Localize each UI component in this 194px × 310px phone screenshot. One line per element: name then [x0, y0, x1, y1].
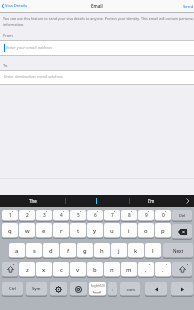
button[interactable]: Sym	[26, 282, 47, 296]
staticText: d	[49, 247, 53, 255]
staticText: Ctrl	[9, 286, 17, 292]
staticText: 4	[60, 212, 63, 219]
staticText: m	[126, 266, 132, 274]
button[interactable]: o	[138, 223, 154, 238]
button[interactable]	[172, 224, 192, 239]
button[interactable]: 8	[121, 210, 137, 221]
button[interactable]: g	[77, 243, 93, 258]
button[interactable]: Ctrl	[2, 282, 23, 296]
staticText: o	[144, 227, 148, 235]
button[interactable]: t	[70, 223, 86, 238]
staticText: h	[100, 247, 104, 255]
button[interactable]	[184, 195, 194, 207]
button[interactable]: .com	[120, 282, 140, 296]
button[interactable]: y	[87, 223, 103, 238]
staticText: f	[67, 247, 70, 255]
button[interactable]: d	[43, 243, 59, 258]
staticText: x	[42, 266, 46, 274]
button[interactable]: m	[121, 262, 137, 277]
button[interactable]	[50, 282, 67, 296]
button[interactable]: u	[104, 223, 120, 238]
staticText: 6	[94, 212, 97, 219]
button[interactable]: p	[155, 223, 171, 238]
staticText: Next	[173, 248, 184, 254]
staticText: .	[162, 266, 164, 274]
button[interactable]: i	[121, 223, 137, 238]
button[interactable]: x	[36, 262, 52, 277]
button[interactable]	[138, 195, 164, 207]
button[interactable]: q	[2, 223, 18, 238]
staticText: t	[77, 227, 80, 235]
button[interactable]: Del	[172, 210, 192, 221]
staticText: q	[8, 227, 12, 235]
button[interactable]	[2, 262, 18, 277]
button[interactable]: f	[60, 243, 76, 258]
button[interactable]: 9	[138, 210, 154, 221]
button[interactable]: 2	[19, 210, 35, 221]
button[interactable]	[20, 195, 46, 207]
staticText: r	[60, 227, 63, 235]
staticText: v	[76, 266, 80, 274]
button[interactable]	[171, 282, 193, 296]
button[interactable]: b	[87, 262, 103, 277]
button[interactable]: .	[155, 262, 171, 277]
button[interactable]: English(US)	[89, 282, 106, 296]
button[interactable]: z	[19, 262, 35, 277]
staticText: w	[25, 227, 30, 235]
staticText: Sym	[32, 286, 41, 292]
staticText: English(US)	[91, 284, 105, 288]
staticText: You can use this feature to send your vi…	[3, 16, 193, 21]
staticText: Enter your email address	[6, 45, 53, 51]
staticText: a	[15, 247, 19, 255]
staticText: Enter destination email address	[4, 74, 63, 80]
button[interactable]	[70, 282, 87, 296]
button[interactable]	[0, 40, 194, 55]
button[interactable]	[0, 70, 194, 84]
staticText: p	[161, 227, 165, 235]
staticText: Visa Details	[5, 3, 27, 9]
button[interactable]	[1, 1, 41, 12]
staticText: k	[134, 247, 138, 255]
button[interactable]: n	[104, 262, 120, 277]
staticText: 8	[128, 212, 131, 219]
button[interactable]: a	[9, 243, 25, 258]
staticText: i	[128, 227, 130, 235]
button[interactable]: r	[53, 223, 69, 238]
staticText: j	[118, 247, 120, 255]
staticText: z	[26, 266, 29, 274]
staticText: 0	[162, 212, 165, 219]
staticText: I'm	[148, 198, 155, 204]
button[interactable]	[172, 262, 192, 277]
staticText: 5	[77, 212, 80, 219]
button[interactable]: :	[108, 282, 117, 296]
button[interactable]: k	[128, 243, 144, 258]
button[interactable]: v	[70, 262, 86, 277]
button[interactable]: 6	[87, 210, 103, 221]
button[interactable]: e	[36, 223, 52, 238]
staticText: From	[3, 33, 13, 38]
button[interactable]: Send	[170, 0, 194, 12]
staticText: ,	[145, 266, 147, 274]
staticText: l	[152, 247, 154, 255]
button[interactable]: l	[145, 243, 161, 258]
button[interactable]: 5	[70, 210, 86, 221]
button[interactable]: j	[111, 243, 127, 258]
button[interactable]: 0	[155, 210, 171, 221]
button[interactable]: c	[53, 262, 69, 277]
button[interactable]: 7	[104, 210, 120, 221]
button[interactable]: Next	[163, 243, 193, 258]
staticText: 1	[9, 212, 12, 219]
staticText: g	[83, 247, 87, 255]
staticText: The	[29, 198, 37, 204]
button[interactable]: w	[19, 223, 35, 238]
button[interactable]: 4	[53, 210, 69, 221]
button[interactable]	[145, 282, 167, 296]
staticText: 2	[26, 212, 29, 219]
button[interactable]: 3	[36, 210, 52, 221]
staticText: Email	[91, 3, 103, 9]
button[interactable]: s	[26, 243, 42, 258]
button[interactable]: ,	[138, 262, 154, 277]
button[interactable]: h	[94, 243, 110, 258]
button[interactable]: 1	[2, 210, 18, 221]
staticText: Send	[183, 3, 194, 9]
